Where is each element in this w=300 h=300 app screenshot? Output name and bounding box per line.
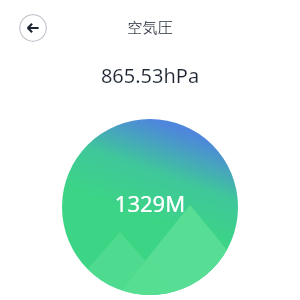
staticText: 1329M [0, 188, 300, 218]
button[interactable]: Back [19, 14, 47, 42]
staticText: 空気圧 [0, 19, 300, 38]
staticText: 865.53hPa [0, 62, 300, 89]
